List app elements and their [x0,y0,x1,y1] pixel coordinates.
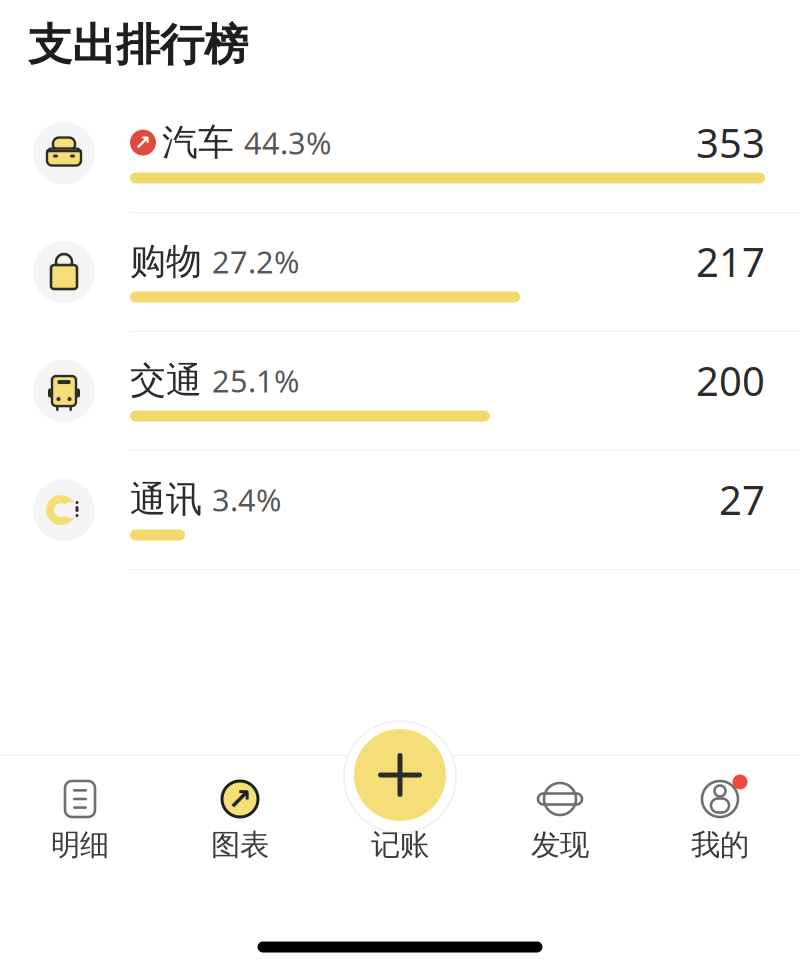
button[interactable]: 发现 [480,777,640,863]
staticText: 200 [696,354,765,407]
staticText: 汽车 [162,120,234,165]
button[interactable]: ↗ [0,94,800,213]
button[interactable]: ↗ [160,777,320,863]
staticText: 图表 [211,827,269,863]
button[interactable]: 通讯 [0,451,800,570]
staticText: 217 [696,235,765,288]
staticText: ↗ [134,131,151,154]
staticText: 购物 [130,239,202,284]
button[interactable]: 记账 [320,777,480,863]
staticText: 44.3% [244,122,331,163]
staticText: 353 [696,116,765,169]
staticText: 3.4% [212,479,281,520]
staticText: 交通 [130,358,202,403]
staticText: 记账 [371,827,429,863]
staticText: 明细 [51,827,109,863]
button[interactable]: 我的 [640,777,800,863]
staticText: 通讯 [130,477,202,522]
button[interactable]: 记账 [354,729,446,821]
button[interactable]: 交通 [0,332,800,451]
staticText: 27.2% [212,241,299,282]
staticText: 27 [719,473,765,526]
button[interactable]: 明细 [0,777,160,863]
staticText: 支出排行榜 [28,18,248,72]
staticText: 25.1% [212,360,299,401]
staticText: 我的 [691,827,749,863]
button[interactable]: 购物 [0,213,800,332]
staticText: ↗ [227,782,252,816]
staticText: 发现 [531,827,589,863]
